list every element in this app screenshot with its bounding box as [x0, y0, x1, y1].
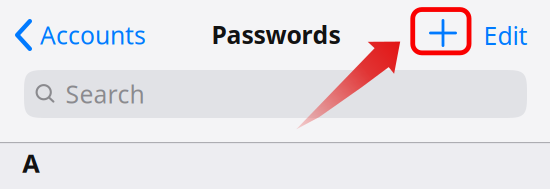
staticText: Accounts — [40, 19, 146, 51]
staticText: Search — [65, 78, 144, 110]
button[interactable]: Accounts — [7, 11, 152, 59]
button[interactable]: Search — [24, 70, 527, 118]
staticText: A — [22, 146, 40, 180]
staticText: Edit — [483, 19, 527, 52]
staticText: Passwords — [211, 18, 340, 51]
button[interactable]: Add password — [420, 13, 466, 53]
button[interactable]: Edit — [472, 11, 538, 60]
